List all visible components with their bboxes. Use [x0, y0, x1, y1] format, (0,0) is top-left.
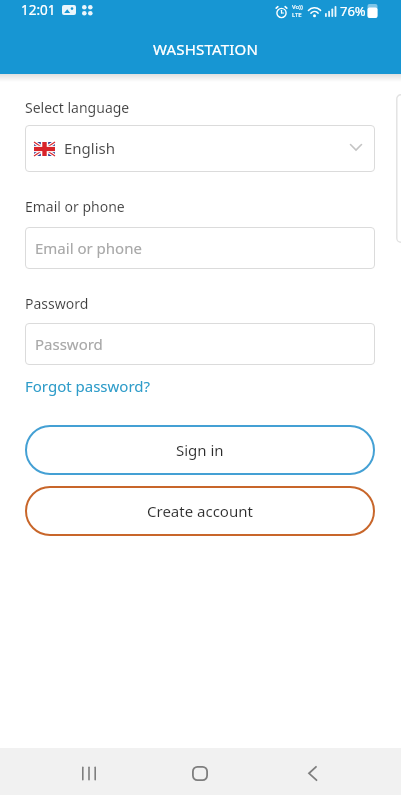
staticText: Sign in [176, 440, 224, 460]
staticText: English [64, 138, 116, 158]
button[interactable]: Forgot password? [25, 376, 151, 396]
button[interactable] [69, 752, 107, 794]
button[interactable]: Password [25, 323, 375, 365]
button[interactable]: Create account [25, 486, 375, 536]
button[interactable]: Sign in [25, 425, 375, 475]
staticText: Create account [147, 501, 253, 521]
staticText: Email or phone [25, 197, 125, 216]
staticText: Forgot password? [25, 376, 151, 396]
staticText: 12:01 [21, 1, 56, 19]
staticText: Password [25, 294, 89, 313]
staticText: Vo)) [292, 3, 303, 11]
button[interactable]: English [25, 125, 375, 172]
staticText: Email or phone [35, 238, 142, 258]
button[interactable]: Email or phone [25, 227, 375, 269]
staticText: WASHSTATION [153, 39, 259, 59]
button[interactable] [293, 752, 331, 794]
staticText: Password [35, 334, 103, 354]
staticText: 76% [340, 2, 366, 20]
staticText: LTE [292, 11, 302, 19]
button[interactable] [181, 752, 219, 794]
staticText: Select language [25, 98, 130, 117]
